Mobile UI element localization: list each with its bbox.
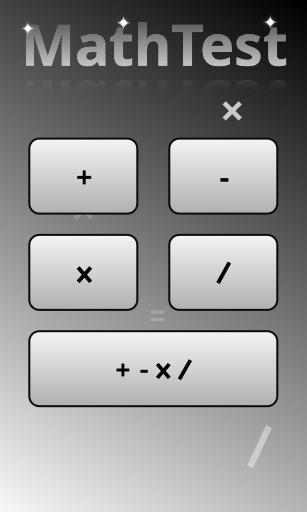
staticText: MathTest <box>21 5 288 81</box>
staticText: MathTest <box>21 65 288 141</box>
staticText: MathTest <box>21 65 288 141</box>
staticText: MathTest <box>21 5 288 81</box>
staticText: MathTest <box>21 5 288 81</box>
staticText: MathTest <box>21 65 288 141</box>
staticText: MathTest <box>21 5 288 81</box>
staticText: MathTest <box>21 5 288 81</box>
staticText: MathTest <box>21 5 288 81</box>
staticText: MathTest <box>21 65 288 141</box>
staticText: MathTest <box>21 65 288 141</box>
staticText: MathTest <box>21 65 288 141</box>
staticText: MathTest <box>21 5 288 81</box>
staticText: MathTest <box>21 65 288 141</box>
staticText: MathTest <box>21 5 288 81</box>
staticText: MathTest <box>21 65 288 141</box>
staticText: MathTest <box>21 5 288 81</box>
staticText: MathTest <box>21 5 288 81</box>
button[interactable]: Subtraction <box>169 139 277 214</box>
staticText: MathTest <box>21 65 288 141</box>
staticText: MathTest <box>21 5 288 81</box>
staticText: MathTest <box>21 65 288 141</box>
staticText: MathTest <box>21 65 288 141</box>
staticText: MathTest <box>21 5 288 81</box>
staticText: MathTest <box>21 65 288 141</box>
staticText: MathTest <box>21 65 288 141</box>
staticText: MathTest <box>21 65 288 141</box>
staticText: MathTest <box>21 5 288 81</box>
staticText: MathTest <box>21 5 288 81</box>
staticText: MathTest <box>21 5 288 81</box>
staticText: MathTest <box>21 5 288 81</box>
staticText: MathTest <box>21 5 288 81</box>
staticText: MathTest <box>21 65 288 141</box>
staticText: MathTest <box>21 5 288 81</box>
staticText: MathTest <box>21 5 288 81</box>
staticText: MathTest <box>21 65 288 141</box>
staticText: MathTest <box>21 65 288 141</box>
staticText: MathTest <box>21 65 288 141</box>
staticText: MathTest <box>21 65 288 141</box>
staticText: MathTest <box>21 5 288 81</box>
staticText: MathTest <box>21 5 288 81</box>
button[interactable]: All operations <box>29 331 277 406</box>
button[interactable]: Division <box>169 235 277 310</box>
staticText: MathTest <box>21 65 288 141</box>
staticText: MathTest <box>21 5 288 81</box>
staticText: MathTest <box>21 5 288 81</box>
staticText: MathTest <box>21 5 288 81</box>
staticText: MathTest <box>21 65 288 141</box>
staticText: MathTest <box>21 65 288 141</box>
staticText: MathTest <box>21 5 288 81</box>
button[interactable]: Addition <box>29 139 137 214</box>
staticText: MathTest <box>21 5 288 81</box>
staticText: MathTest <box>21 5 288 81</box>
staticText: MathTest <box>21 5 288 81</box>
staticText: MathTest <box>21 5 288 81</box>
button[interactable]: Multiplication <box>29 235 137 310</box>
staticText: MathTest <box>21 5 288 81</box>
staticText: MathTest <box>21 65 288 141</box>
staticText: MathTest <box>21 5 288 81</box>
staticText: MathTest <box>21 5 288 81</box>
staticText: MathTest <box>21 65 288 141</box>
